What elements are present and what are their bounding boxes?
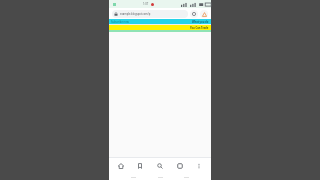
button[interactable]: Bookmarks [132, 158, 148, 174]
staticText: You Can Trade [190, 26, 209, 30]
button[interactable]: Tabs [172, 158, 188, 174]
button[interactable]: Subscribe now [109, 19, 211, 24]
staticText: example.blogspot.com/p [120, 12, 186, 16]
staticText: Subscribe now [111, 20, 129, 24]
staticText: What you do [192, 20, 209, 24]
staticText: 1:07 [143, 2, 149, 6]
button[interactable]: You Can Trade [109, 25, 211, 30]
button[interactable]: Home [113, 158, 129, 174]
button[interactable]: Search [152, 158, 168, 174]
button[interactable]: example.blogspot.com/p [112, 10, 188, 18]
button[interactable]: Alerts [200, 10, 208, 18]
button[interactable]: Share [190, 10, 198, 18]
button[interactable]: More options [191, 158, 207, 174]
